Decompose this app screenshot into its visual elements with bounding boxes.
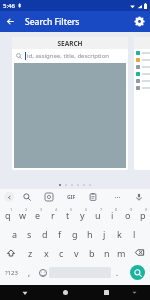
button[interactable]: Settings (129, 11, 150, 32)
staticText: 5 (70, 207, 73, 212)
button[interactable]: , (23, 262, 36, 283)
button[interactable]: 1 (0, 205, 15, 224)
button[interactable]: a (7, 224, 22, 243)
button[interactable]: Search (21, 191, 33, 203)
button[interactable]: v (69, 243, 84, 262)
staticText: 2 (25, 207, 28, 212)
staticText: . (116, 267, 119, 278)
staticText: v (74, 247, 79, 259)
staticText: m (117, 247, 126, 259)
button[interactable]: 3 (30, 205, 45, 224)
button[interactable]: Hide keyboard (125, 285, 144, 300)
button[interactable]: f (52, 224, 67, 243)
staticText: u (95, 209, 101, 221)
staticText: i (111, 209, 114, 221)
button[interactable]: Clipboard (87, 191, 99, 203)
staticText: ?123 (5, 269, 18, 277)
button[interactable]: b (84, 243, 99, 262)
button[interactable]: m (114, 243, 129, 262)
staticText: 0 (145, 207, 148, 212)
button[interactable]: GIF (65, 191, 77, 203)
staticText: f (58, 228, 62, 240)
staticText: e (35, 209, 41, 221)
button[interactable]: s (22, 224, 37, 243)
staticText: l (133, 228, 136, 240)
button[interactable]: 0 (135, 205, 150, 224)
button[interactable]: 8 (105, 205, 120, 224)
staticText: y (80, 209, 85, 221)
button[interactable]: x (38, 243, 54, 262)
button[interactable]: j (97, 224, 112, 243)
staticText: 9 (130, 207, 133, 212)
button[interactable]: 7 (90, 205, 105, 224)
staticText: 1 (10, 207, 13, 212)
button[interactable]: ?123 (0, 262, 23, 283)
button[interactable]: n (99, 243, 114, 262)
button[interactable]: Back (14, 285, 35, 300)
button[interactable]: 5 (60, 205, 75, 224)
staticText: n (104, 247, 110, 259)
button[interactable]: Voice input (133, 191, 145, 203)
staticText: 7 (100, 207, 103, 212)
button[interactable]: c (54, 243, 69, 262)
staticText: q (5, 209, 11, 221)
button[interactable]: More options (111, 191, 123, 203)
staticText: , (28, 267, 31, 278)
staticText: c (59, 247, 64, 259)
staticText: g (72, 228, 78, 240)
staticText: t (66, 209, 70, 221)
staticText: k (117, 228, 122, 240)
staticText: x (44, 247, 49, 259)
staticText: a (12, 228, 18, 240)
staticText: o (125, 209, 131, 221)
staticText: SEARCH (57, 39, 83, 48)
button[interactable]: Search (124, 262, 150, 283)
button[interactable]: SEARCH (12, 37, 128, 170)
button[interactable]: Stickers (43, 191, 55, 203)
staticText: d (42, 228, 48, 240)
button[interactable]: h (82, 224, 97, 243)
button[interactable]: Backspace (129, 243, 150, 262)
staticText: Search Filters (25, 16, 80, 28)
staticText: z (28, 247, 33, 259)
button[interactable]: . (111, 262, 124, 283)
button[interactable]: 6 (75, 205, 90, 224)
button[interactable]: d (37, 224, 52, 243)
staticText: b (89, 247, 95, 259)
staticText: 4 (55, 207, 58, 212)
button[interactable]: l (127, 224, 142, 243)
button[interactable]: Back (0, 11, 21, 32)
button[interactable]: k (112, 224, 127, 243)
staticText: j (103, 228, 106, 240)
staticText: 3 (40, 207, 43, 212)
staticText: id, assignee, title, description (27, 52, 109, 60)
staticText: p (140, 209, 146, 221)
button[interactable] (134, 37, 150, 170)
staticText: s (27, 228, 32, 240)
button[interactable]: g (67, 224, 82, 243)
button[interactable]: 2 (15, 205, 30, 224)
staticText: 6 (85, 207, 88, 212)
staticText: 8 (115, 207, 118, 212)
button[interactable]: 4 (45, 205, 60, 224)
button[interactable]: 9 (120, 205, 135, 224)
button[interactable]: Home (54, 285, 76, 300)
staticText: r (51, 209, 55, 221)
button[interactable]: Recent apps (95, 285, 117, 300)
button[interactable]: Shift (0, 243, 22, 262)
button[interactable]: Emoji (36, 262, 49, 283)
button[interactable]: z (22, 243, 38, 262)
staticText: 5:46 (3, 2, 15, 10)
button[interactable]: Expand toolbar (4, 192, 14, 202)
staticText: h (87, 228, 93, 240)
staticText: GIF (67, 194, 76, 201)
staticText: w (19, 209, 27, 221)
